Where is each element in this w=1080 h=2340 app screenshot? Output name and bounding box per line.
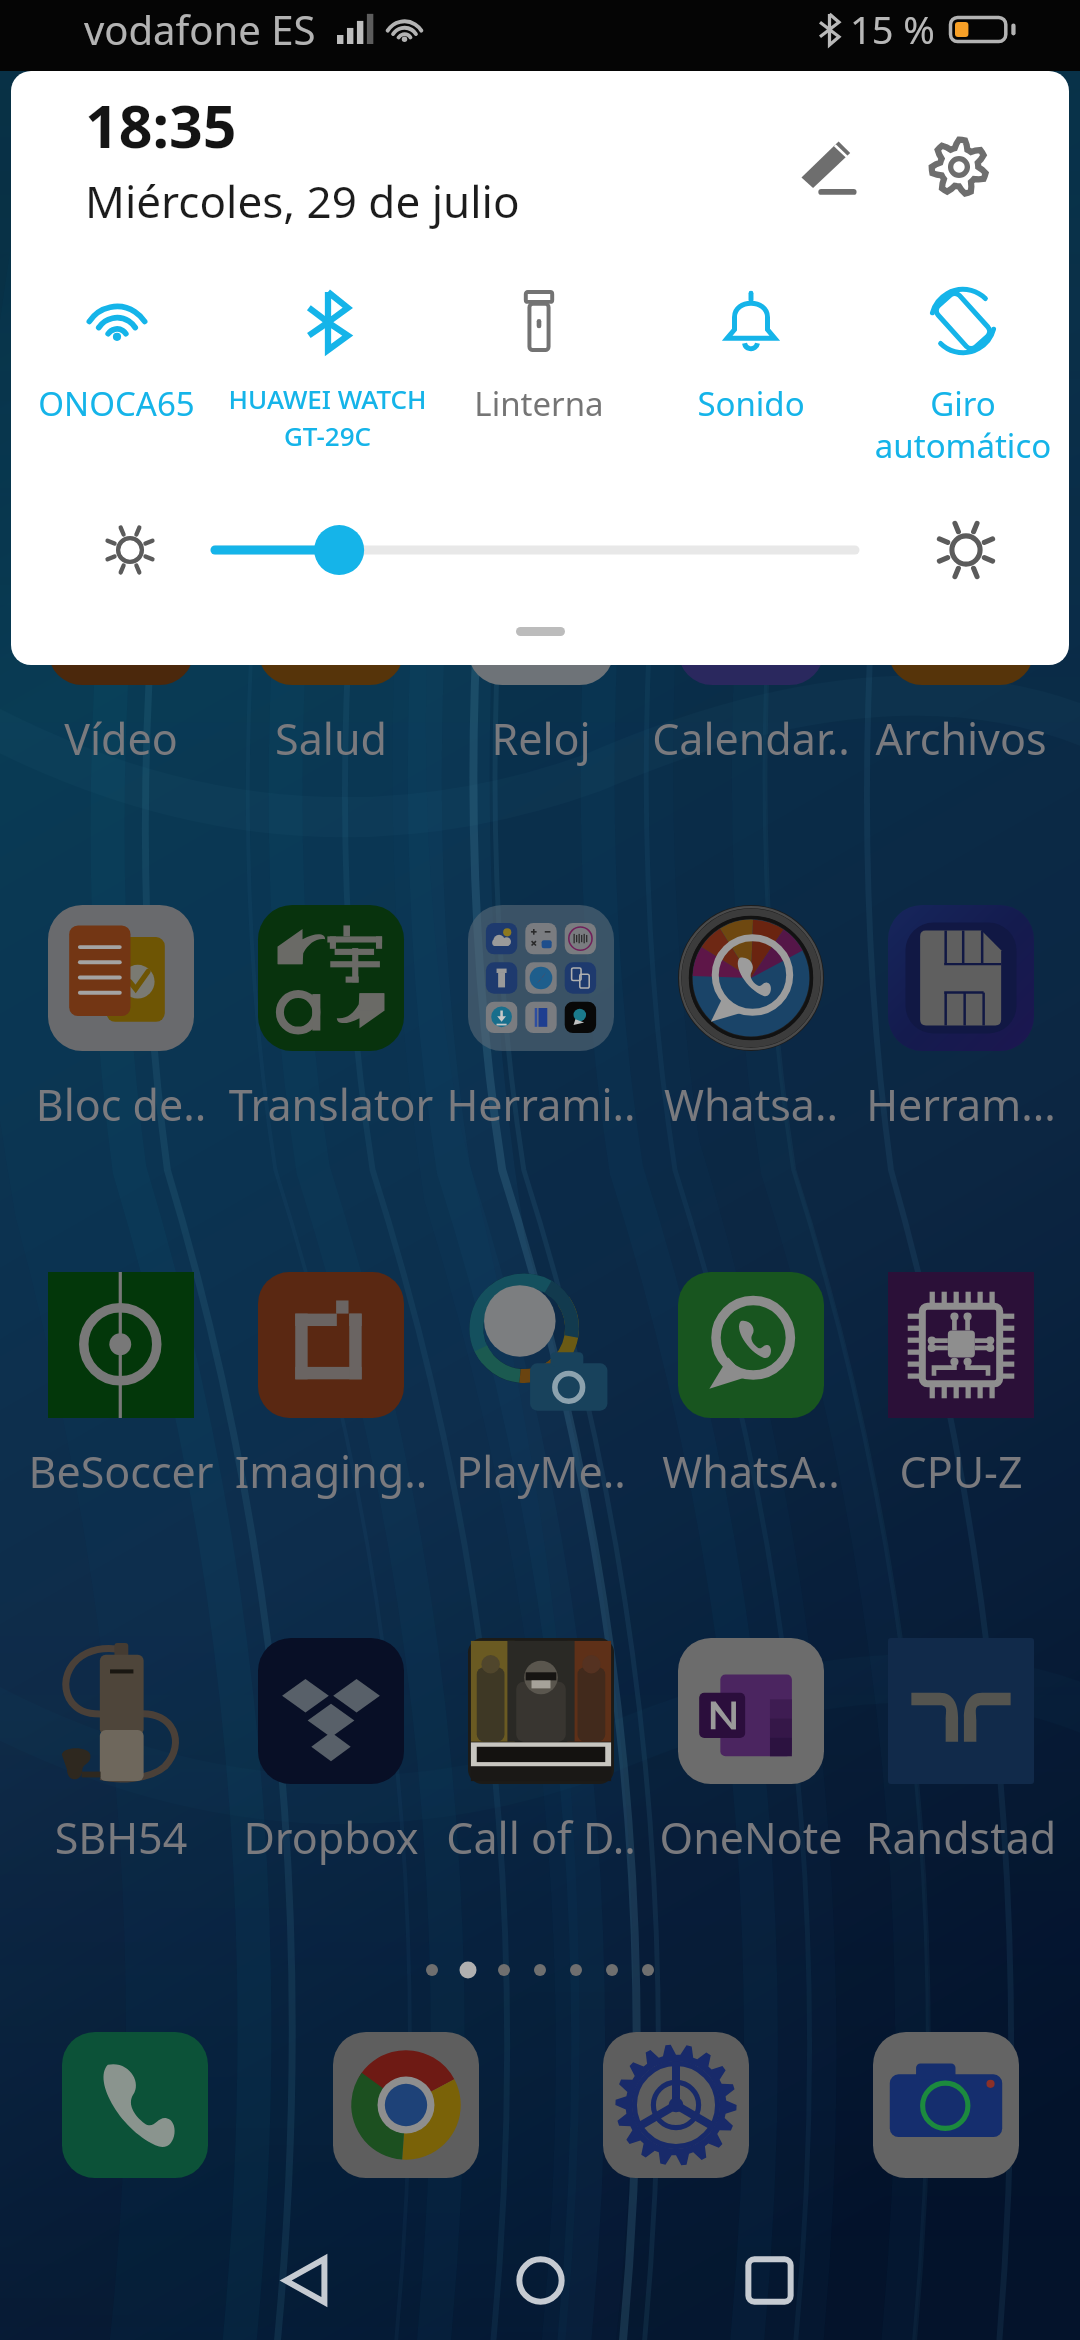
- button[interactable]: Herram...: [856, 905, 1066, 1145]
- button[interactable]: Recent apps: [694, 2226, 844, 2334]
- button[interactable]: SBH54: [16, 1638, 226, 1878]
- button[interactable]: Translator: [226, 905, 436, 1145]
- staticText: Giro automático: [857, 381, 1069, 468]
- staticText: Herrami..: [436, 1075, 646, 1134]
- button[interactable]: BeSoccer: [16, 1272, 226, 1512]
- staticText: SBH54: [16, 1808, 226, 1867]
- button[interactable]: Edit quick settings: [777, 117, 877, 217]
- staticText: CPU-Z: [856, 1442, 1066, 1501]
- staticText: Vídeo: [16, 709, 226, 768]
- button[interactable]: PlayMe..: [436, 1272, 646, 1512]
- staticText: BeSoccer: [16, 1442, 226, 1501]
- staticText: Salud: [226, 709, 436, 768]
- button[interactable]: Whatsa..: [646, 905, 856, 1145]
- staticText: Herram...: [856, 1075, 1066, 1134]
- button[interactable]: OneNote: [646, 1638, 856, 1878]
- button[interactable]: Raise brightness: [911, 495, 1021, 605]
- staticText: Miércoles, 29 de julio: [85, 171, 520, 231]
- staticText: ONOCA65: [11, 381, 222, 426]
- button[interactable]: Home: [465, 2226, 615, 2334]
- staticText: Reloj: [436, 709, 646, 768]
- staticText: 15 %: [850, 3, 935, 55]
- button[interactable]: Sonido: [645, 266, 857, 490]
- button[interactable]: Collapse panel: [11, 573, 1069, 665]
- staticText: Bloc de..: [16, 1075, 226, 1134]
- button[interactable]: Linterna: [433, 266, 645, 490]
- staticText: Sonido: [645, 381, 857, 426]
- staticText: Dropbox: [226, 1808, 436, 1867]
- staticText: Call of D..: [436, 1808, 646, 1867]
- staticText: Linterna: [433, 381, 645, 426]
- staticText: Archivos: [856, 709, 1066, 768]
- button[interactable]: Randstad: [856, 1638, 1066, 1878]
- staticText: Imaging..: [226, 1442, 436, 1501]
- button[interactable]: Herrami..: [436, 905, 646, 1145]
- button[interactable]: Dropbox: [226, 1638, 436, 1878]
- staticText: vodafone ES: [84, 2, 316, 56]
- button[interactable]: WhatsA..: [646, 1272, 856, 1512]
- button[interactable]: Phone: [62, 2032, 208, 2178]
- button[interactable]: Lower brightness: [81, 501, 179, 599]
- button[interactable]: Back: [230, 2226, 380, 2334]
- button[interactable]: Bloc de..: [16, 905, 226, 1145]
- staticText: Calendar..: [646, 709, 856, 768]
- button[interactable]: Reloj: [436, 539, 646, 779]
- staticText: Whatsa..: [646, 1075, 856, 1134]
- staticText: PlayMe..: [436, 1442, 646, 1501]
- staticText: 18:35: [85, 85, 237, 165]
- staticText: WhatsA..: [646, 1442, 856, 1501]
- button[interactable]: Phone Manager: [603, 2032, 749, 2178]
- button[interactable]: CPU-Z: [856, 1272, 1066, 1512]
- button[interactable]: ONOCA65: [11, 266, 222, 490]
- staticText: HUAWEI WATCH GT-29C: [222, 381, 433, 454]
- button[interactable]: Archivos: [856, 539, 1066, 779]
- button[interactable]: HUAWEI WATCH GT-29C: [222, 266, 433, 490]
- button[interactable]: Imaging..: [226, 1272, 436, 1512]
- button[interactable]: Calendar..: [646, 539, 856, 779]
- button[interactable]: Camera: [873, 2032, 1019, 2178]
- staticText: OneNote: [646, 1808, 856, 1867]
- staticText: Randstad: [856, 1808, 1066, 1867]
- button[interactable]: Giro automático: [857, 266, 1069, 490]
- button[interactable]: Settings: [909, 117, 1009, 217]
- button[interactable]: Brightness slider: [205, 501, 865, 599]
- button[interactable]: Call of D..: [436, 1638, 646, 1878]
- staticText: Translator: [226, 1075, 436, 1134]
- button[interactable]: Chrome: [333, 2032, 479, 2178]
- button[interactable]: Salud: [226, 539, 436, 779]
- button[interactable]: Vídeo: [16, 539, 226, 779]
